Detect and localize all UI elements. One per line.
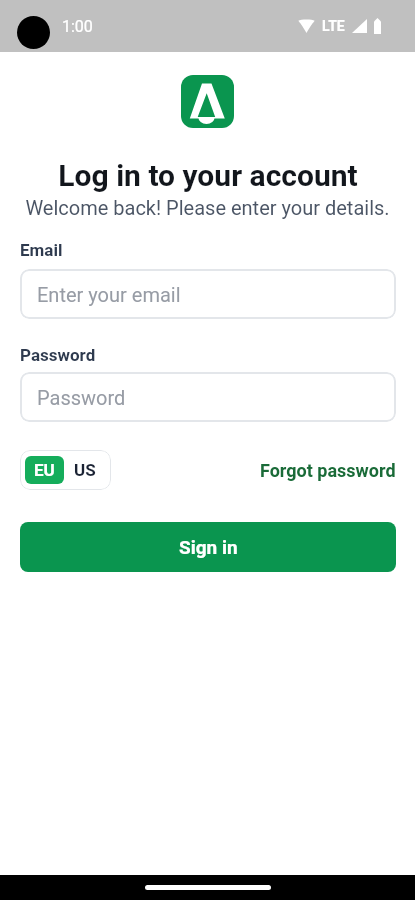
button[interactable]: Enter your email bbox=[20, 269, 396, 319]
button[interactable]: Sign in bbox=[20, 522, 396, 572]
button[interactable]: US bbox=[64, 456, 106, 484]
staticText: Password bbox=[20, 345, 96, 365]
other: Home bbox=[145, 885, 271, 890]
staticText: Forgot password bbox=[260, 460, 396, 481]
button[interactable]: EU bbox=[25, 456, 64, 484]
button[interactable]: Forgot password bbox=[260, 460, 396, 481]
staticText: Log in to your account bbox=[58, 158, 358, 193]
button[interactable]: Password bbox=[20, 372, 396, 422]
staticText: LTE bbox=[322, 18, 345, 34]
staticText: 1:00 bbox=[62, 17, 93, 36]
staticText: Welcome back! Please enter your details. bbox=[25, 196, 390, 219]
staticText: Sign in bbox=[179, 536, 238, 558]
staticText: US bbox=[74, 460, 96, 480]
staticText: Enter your email bbox=[37, 283, 181, 306]
staticText: Password bbox=[37, 386, 126, 409]
staticText: EU bbox=[34, 460, 55, 480]
staticText: Email bbox=[20, 240, 63, 260]
